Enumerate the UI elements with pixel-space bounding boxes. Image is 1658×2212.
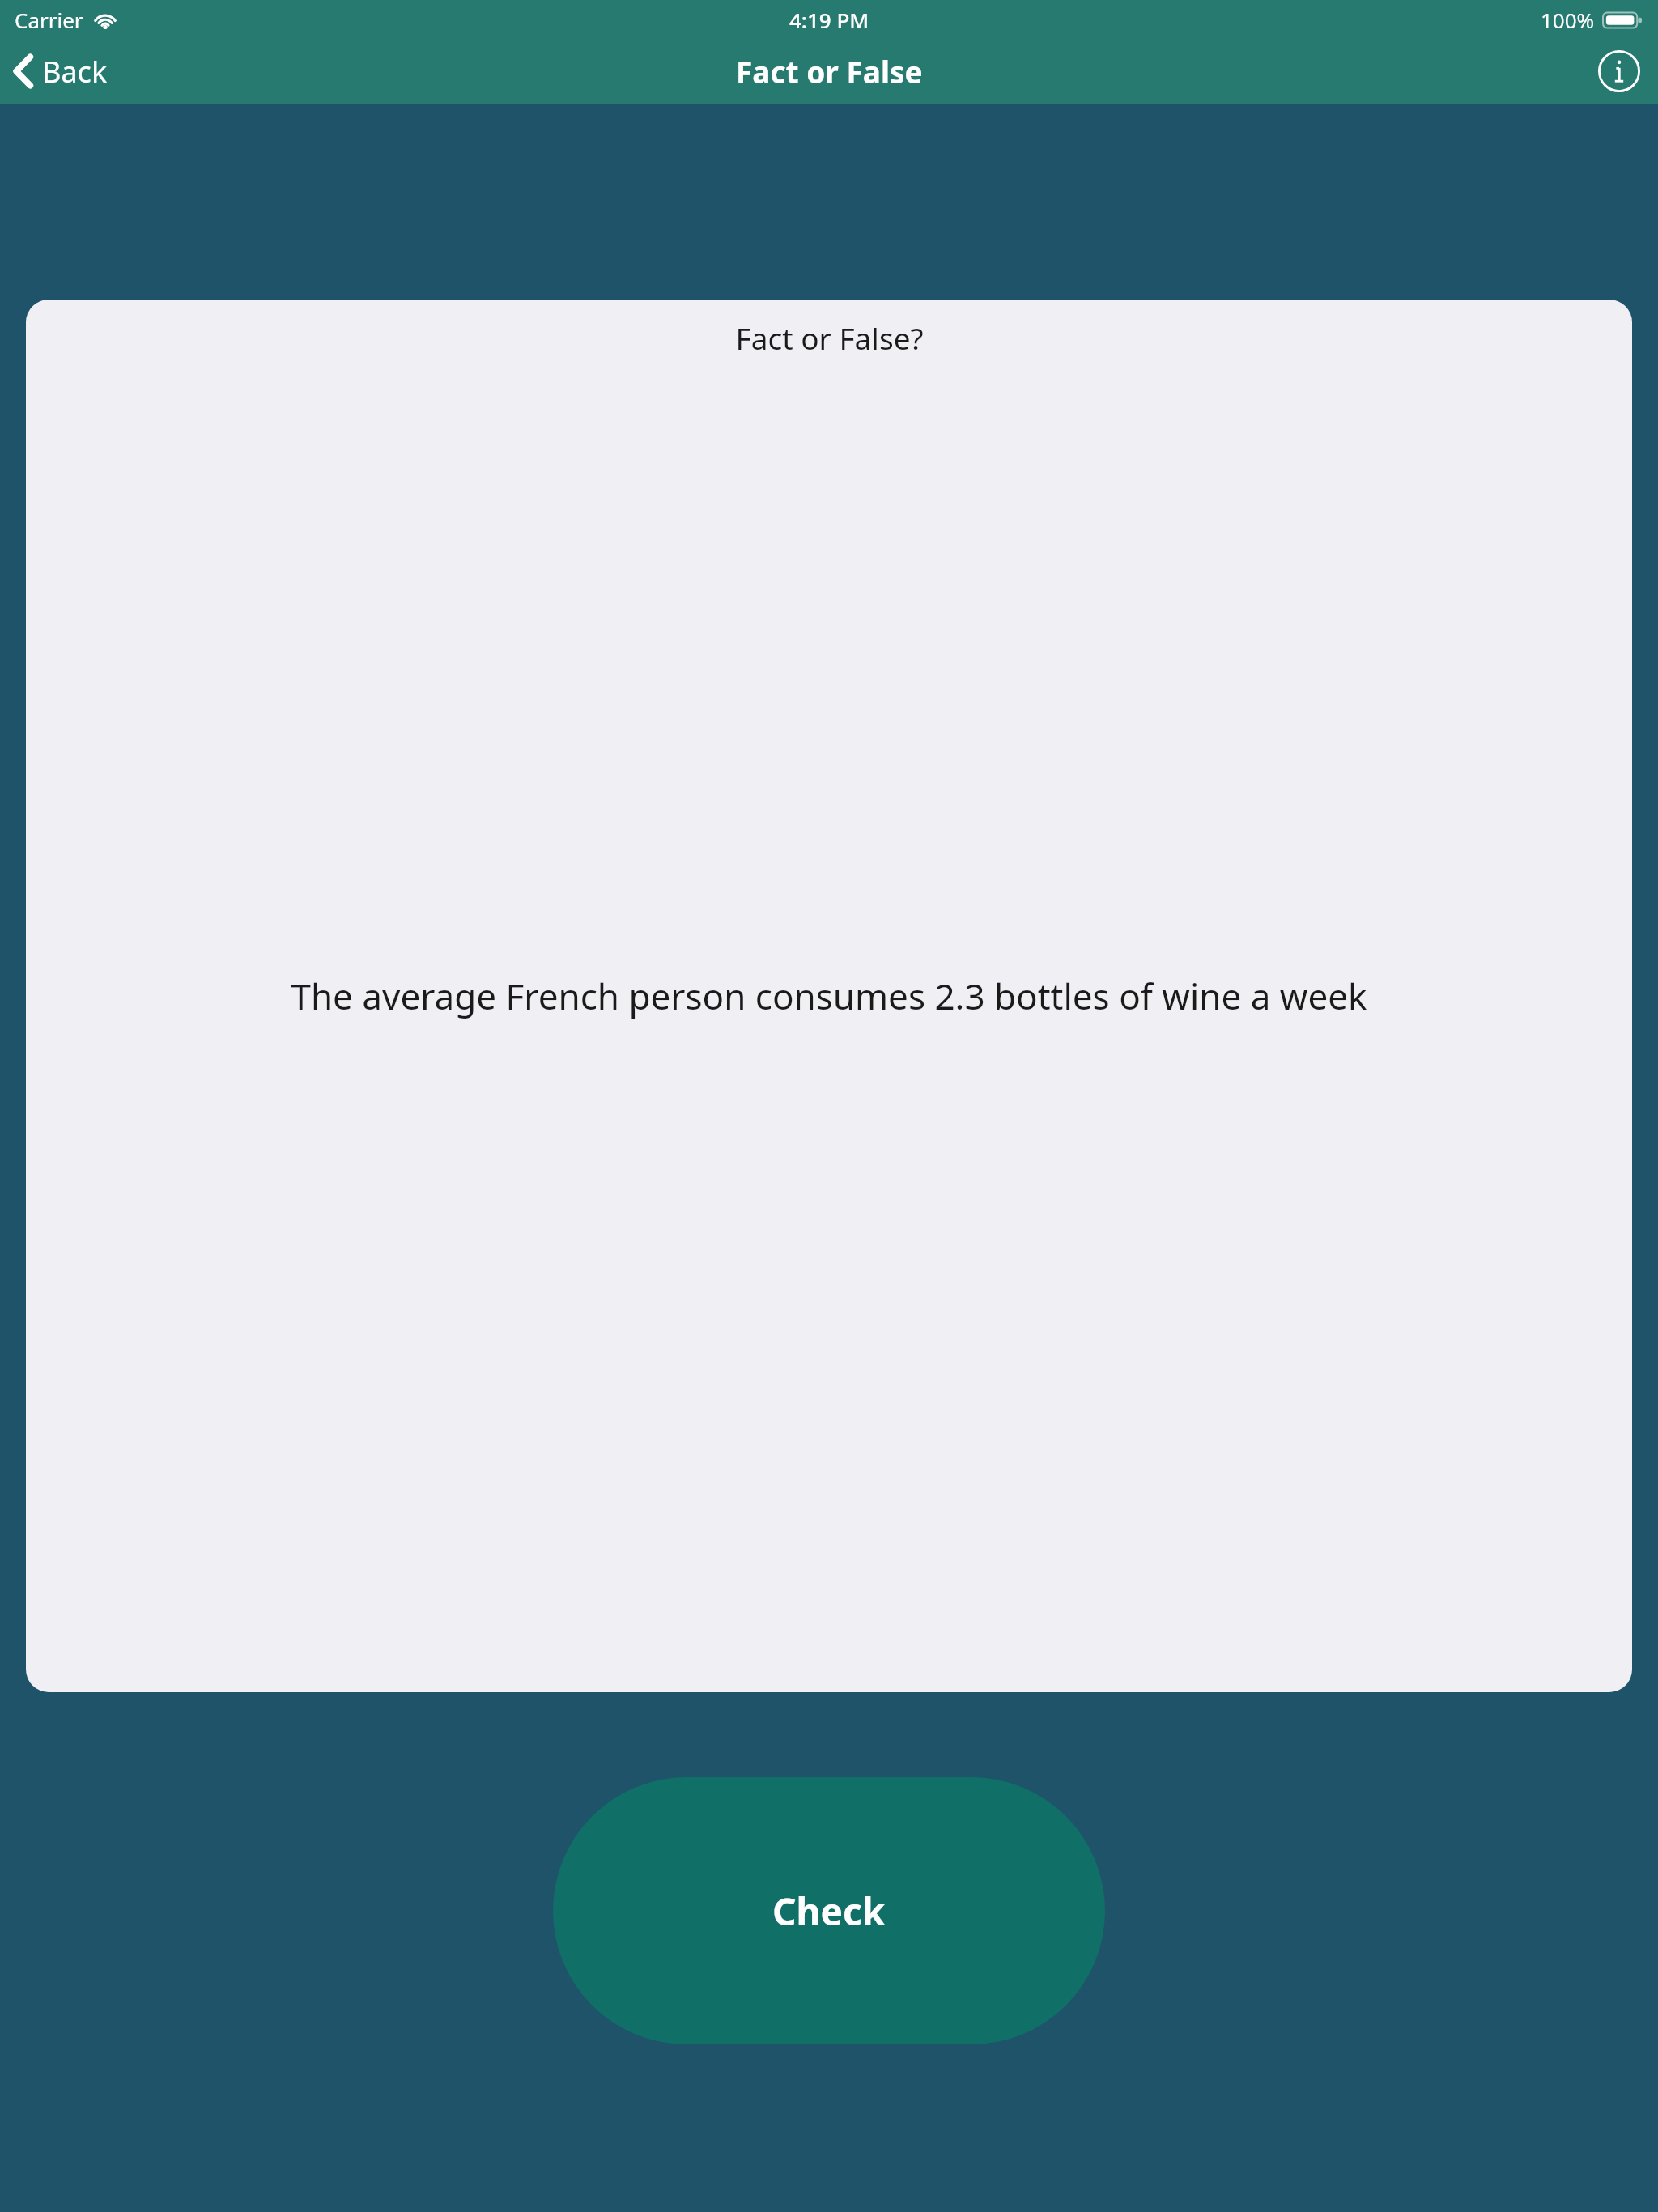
button[interactable]: Fact or False? xyxy=(26,300,1632,1692)
staticText: Fact or False? xyxy=(735,317,924,358)
staticText: Back xyxy=(42,52,108,91)
button[interactable]: Info xyxy=(1580,39,1658,104)
button[interactable]: Back xyxy=(0,39,124,104)
staticText: The average French person consumes 2.3 b… xyxy=(58,972,1600,1020)
staticText: 4:19 PM xyxy=(789,6,869,34)
staticText: 100% xyxy=(1541,6,1595,34)
button[interactable]: Check xyxy=(553,1777,1105,2044)
staticText: Carrier xyxy=(15,6,83,34)
staticText: Check xyxy=(772,1886,886,1937)
staticText: Fact or False xyxy=(736,51,923,91)
